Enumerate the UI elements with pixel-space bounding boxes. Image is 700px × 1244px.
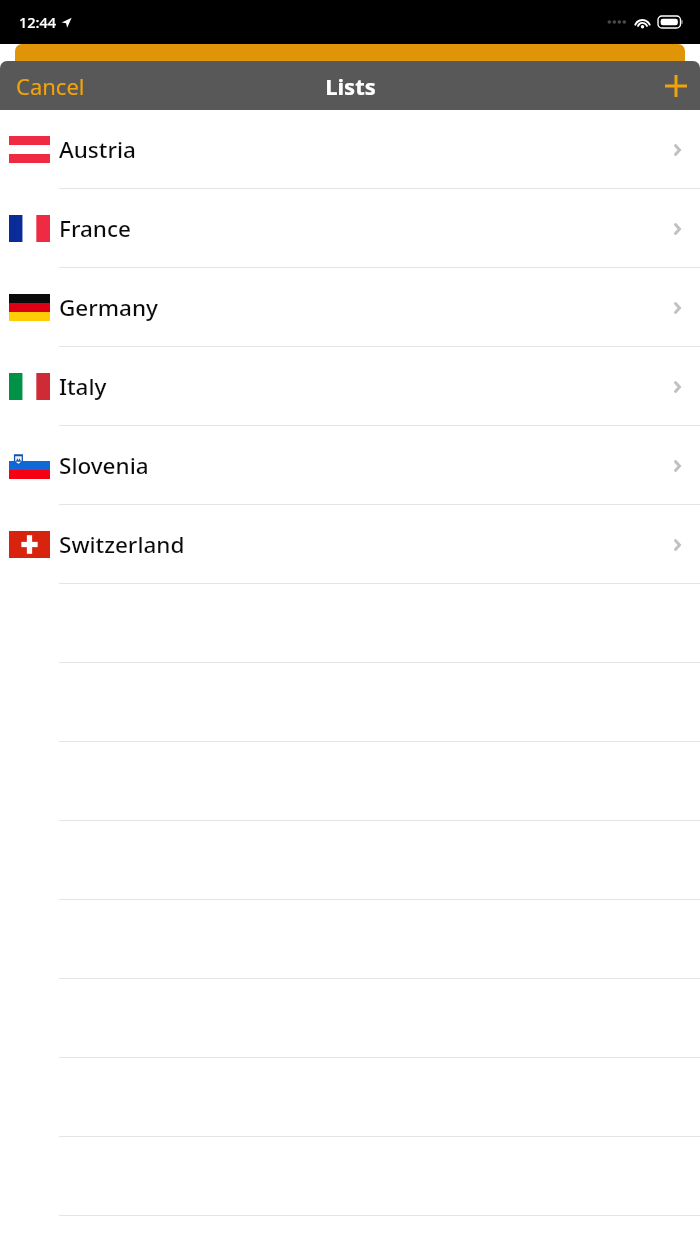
button[interactable]: France [0,189,700,268]
button[interactable]: Cancel [0,63,97,109]
staticText: Italy [59,371,107,402]
staticText: Slovenia [59,450,149,481]
staticText: Germany [59,292,158,323]
staticText: Lists [325,71,376,101]
staticText: 12:44 [19,12,57,32]
button[interactable]: Germany [0,268,700,347]
button[interactable]: Austria [0,110,700,189]
button[interactable]: Add list [652,68,700,104]
button[interactable]: Italy [0,347,700,426]
staticText: France [59,213,131,244]
staticText: Switzerland [59,529,185,560]
button[interactable]: Slovenia [0,426,700,505]
staticText: Austria [59,134,136,165]
button[interactable]: Switzerland [0,505,700,584]
staticText: Cancel [16,71,85,101]
